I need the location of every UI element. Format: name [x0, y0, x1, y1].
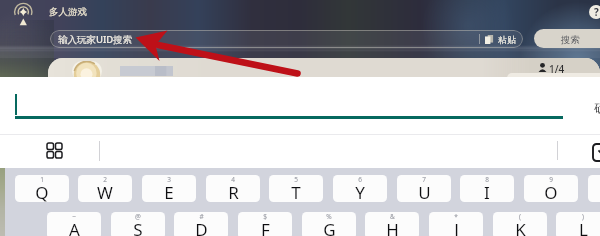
button[interactable]: * — [429, 212, 483, 236]
staticText: L — [579, 218, 588, 236]
staticText: D — [195, 218, 208, 236]
staticText: K — [515, 218, 526, 236]
staticText: $ — [263, 212, 267, 221]
button[interactable]: 输入玩家UID搜索 — [50, 30, 523, 48]
button[interactable]: 5 — [269, 175, 323, 202]
staticText: 5 — [294, 175, 298, 184]
staticText: E — [164, 181, 174, 202]
button[interactable]: & — [365, 212, 419, 236]
staticText: Q — [35, 181, 49, 202]
staticText: 1 — [40, 175, 44, 184]
staticText: 2 — [103, 175, 107, 184]
staticText: 4 — [231, 175, 235, 184]
button[interactable]: 7 — [397, 175, 451, 202]
button[interactable]: # — [174, 212, 228, 236]
staticText: U — [418, 181, 431, 202]
staticText: O — [544, 181, 558, 202]
staticText: 7 — [422, 175, 426, 184]
staticText: ) — [582, 212, 584, 221]
staticText: ~ — [72, 212, 76, 221]
staticText: 3 — [167, 175, 171, 184]
staticText: I — [484, 181, 490, 202]
staticText: R — [228, 181, 239, 202]
staticText: 9 — [549, 175, 553, 184]
staticText: % — [326, 212, 332, 221]
staticText: ? — [594, 5, 599, 19]
button[interactable]: 3 — [142, 175, 196, 202]
staticText: & — [390, 212, 395, 221]
staticText: 8 — [485, 175, 489, 184]
button[interactable]: % — [302, 212, 356, 236]
button[interactable]: 9 — [524, 175, 578, 202]
staticText: * — [454, 212, 458, 221]
staticText: H — [386, 218, 399, 236]
button[interactable]: @ — [111, 212, 165, 236]
staticText: 1/4 — [549, 62, 565, 76]
staticText: Y — [355, 181, 365, 202]
staticText: 6 — [358, 175, 362, 184]
staticText: 搜索 — [561, 34, 580, 46]
staticText: S — [133, 218, 143, 236]
button[interactable]: Help — [589, 5, 600, 19]
button[interactable]: 2 — [78, 175, 132, 202]
staticText: T — [291, 181, 301, 202]
staticText: J — [454, 218, 459, 236]
button[interactable]: ( — [493, 212, 547, 236]
staticText: F — [261, 218, 270, 236]
staticText: A — [69, 218, 80, 236]
staticText: 粘贴 — [498, 34, 516, 45]
staticText: ( — [519, 212, 521, 221]
button[interactable]: 4 — [206, 175, 260, 202]
button[interactable]: Hide keyboard — [593, 144, 600, 161]
button[interactable]: ~ — [47, 212, 101, 236]
staticText: G — [323, 218, 336, 236]
staticText: 输入玩家UID搜索 — [58, 33, 133, 46]
staticText: 多人游戏 — [49, 6, 87, 18]
button[interactable]: 0 — [588, 175, 600, 202]
button[interactable]: 1 — [15, 175, 69, 202]
button[interactable]: Keyboard layouts — [47, 143, 62, 158]
button[interactable]: 搜索 — [534, 29, 600, 48]
button[interactable]: 8 — [460, 175, 514, 202]
button[interactable]: ) — [556, 212, 600, 236]
staticText: 确 — [594, 100, 600, 115]
staticText: @ — [135, 212, 141, 221]
staticText: W — [97, 181, 113, 202]
button[interactable]: $ — [238, 212, 292, 236]
button[interactable]: 6 — [333, 175, 387, 202]
staticText: # — [199, 212, 204, 221]
